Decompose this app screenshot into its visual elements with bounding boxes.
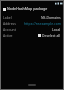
staticText: Deselect all <box>42 33 61 38</box>
button[interactable]: Address <box>1 20 63 26</box>
button[interactable]: Active <box>1 32 63 38</box>
button[interactable]: Label <box>1 14 63 20</box>
staticText: Local <box>52 27 61 32</box>
staticText: Label <box>3 15 12 20</box>
staticText: NodeHashMap package <box>7 6 48 11</box>
staticText: https://nr.example.com <box>24 21 61 26</box>
button[interactable]: Account <box>1 26 63 32</box>
staticText: Active <box>3 33 13 38</box>
staticText: Address <box>3 21 16 26</box>
staticText: Account <box>3 27 16 32</box>
button[interactable]: Navigate up <box>1 6 7 12</box>
button[interactable]: Home <box>28 84 36 86</box>
staticText: NS-Domains <box>41 15 61 20</box>
